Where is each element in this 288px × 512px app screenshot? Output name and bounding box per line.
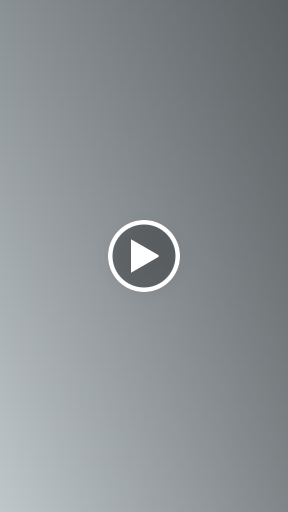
button[interactable]: Play bbox=[108, 220, 180, 292]
